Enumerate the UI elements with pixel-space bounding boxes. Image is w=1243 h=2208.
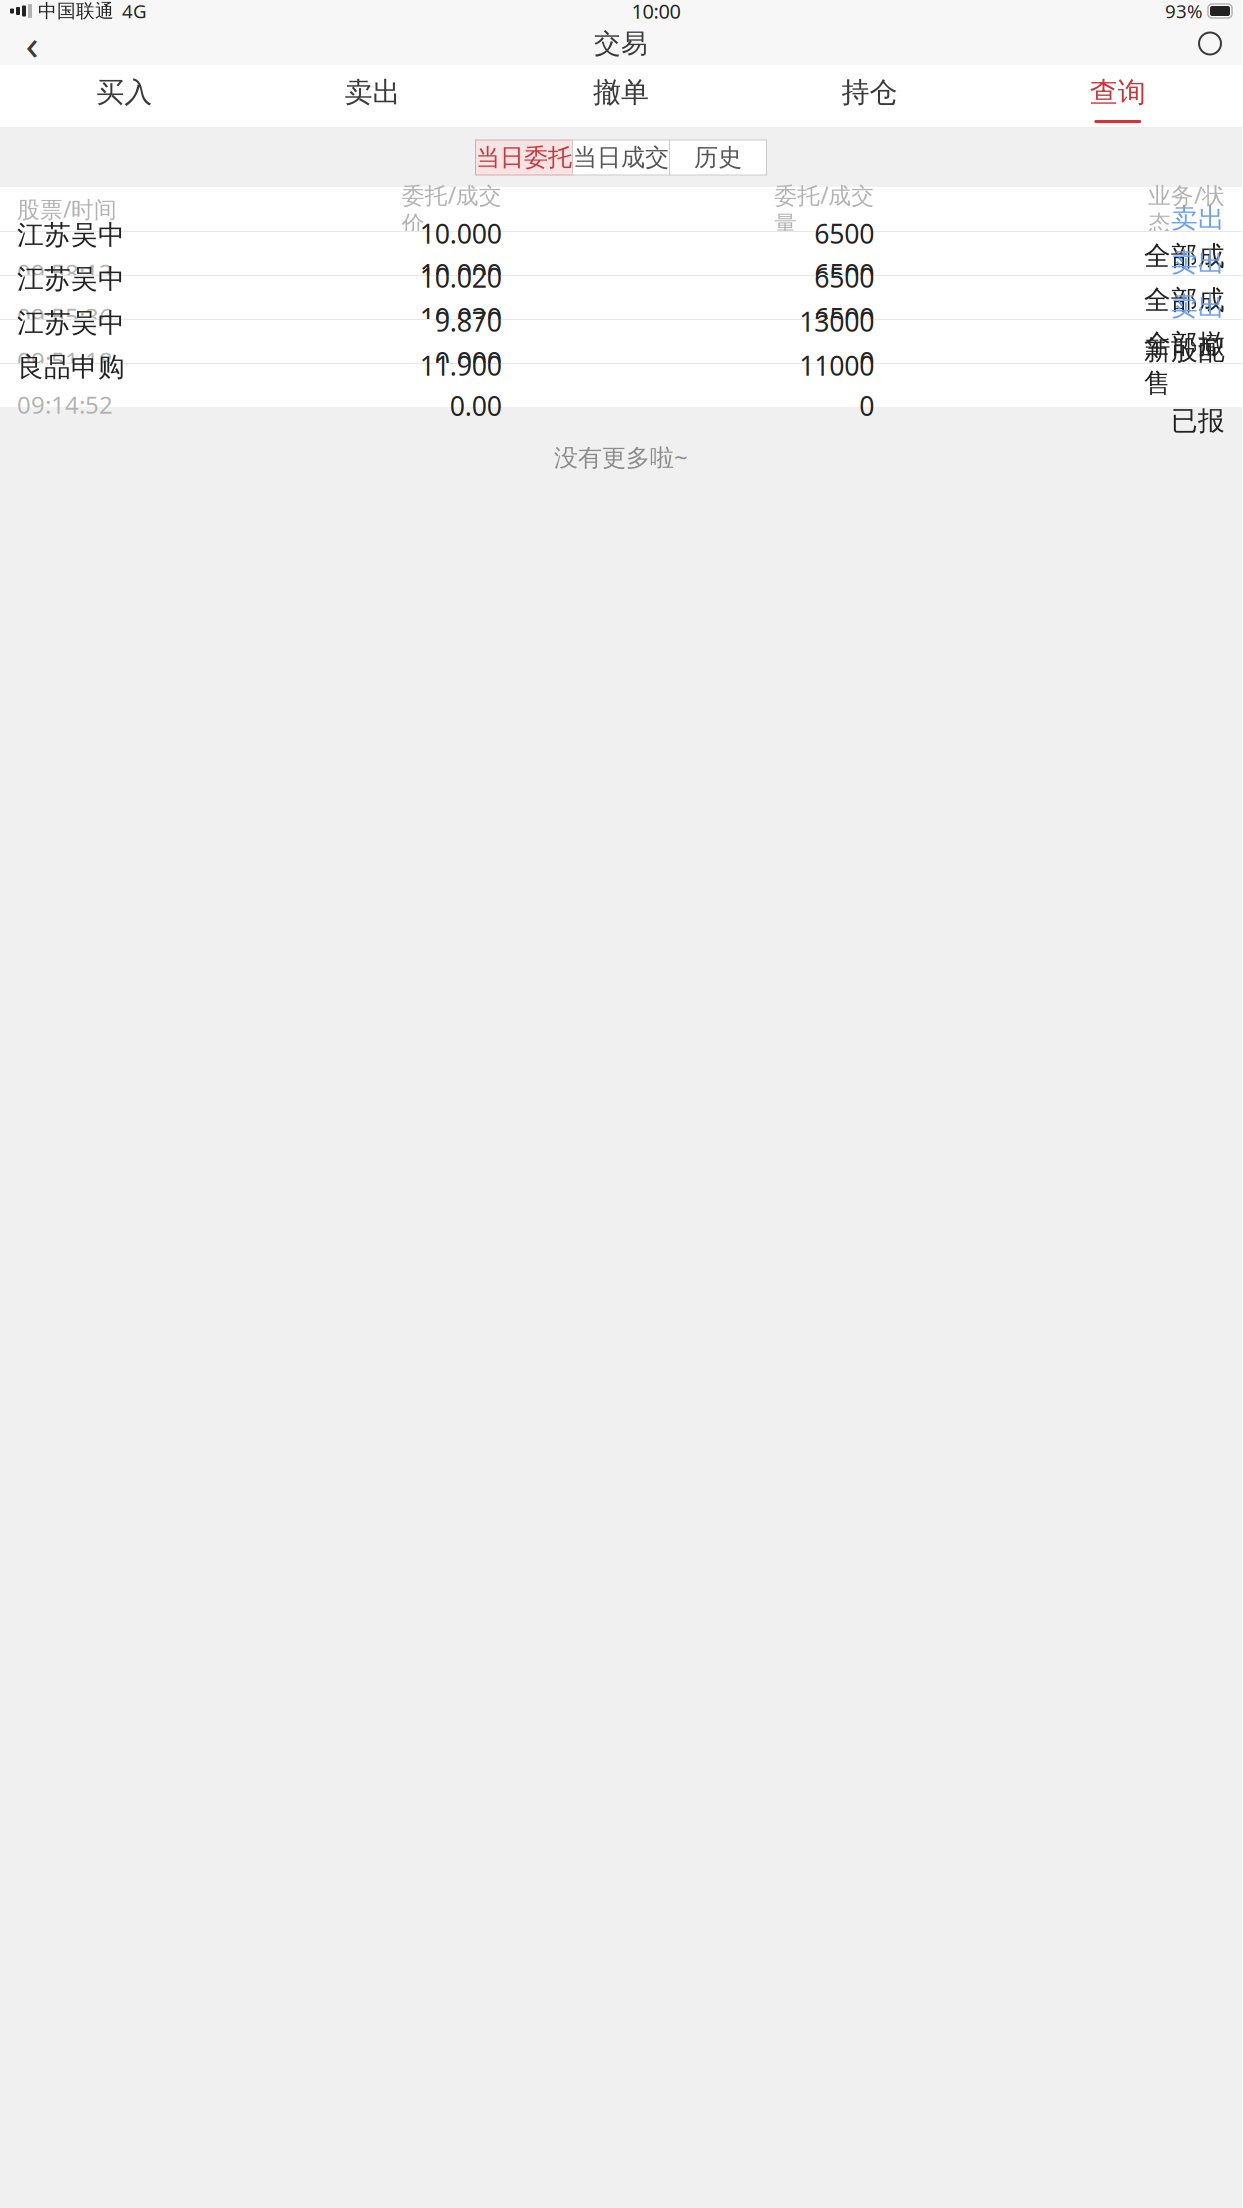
button[interactable]: 江苏吴中 bbox=[0, 276, 1242, 319]
staticText: 没有更多啦~ bbox=[554, 441, 688, 473]
button[interactable]: 江苏吴中 bbox=[0, 232, 1242, 275]
staticText: 9.870 bbox=[435, 304, 502, 339]
staticText: 全部成交 bbox=[1144, 240, 1225, 305]
staticText: 查询 bbox=[1090, 75, 1146, 110]
button[interactable]: 买入 bbox=[0, 65, 248, 127]
staticText: 10.000 bbox=[420, 256, 502, 291]
staticText: 股票/时间 bbox=[17, 194, 117, 224]
button[interactable]: 良品申购 bbox=[0, 364, 1242, 407]
staticText: 已报 bbox=[1171, 404, 1225, 437]
button[interactable]: 当日成交 bbox=[572, 140, 669, 175]
button[interactable]: 当日委托 bbox=[475, 140, 572, 175]
staticText: 卖出 bbox=[1171, 246, 1225, 279]
staticText: 中国联通 bbox=[38, 0, 114, 22]
staticText: 买入 bbox=[96, 75, 152, 110]
staticText: 持仓 bbox=[841, 75, 897, 110]
button[interactable]: 查询 bbox=[994, 65, 1242, 127]
staticText: 江苏吴中 bbox=[17, 263, 125, 295]
staticText: 10:00 bbox=[631, 0, 680, 24]
staticText: 历史 bbox=[694, 143, 742, 172]
staticText: 6500 bbox=[814, 216, 874, 251]
staticText: 6500 bbox=[814, 300, 874, 335]
staticText: 6500 bbox=[814, 260, 874, 295]
staticText: 4G bbox=[122, 0, 147, 23]
staticText: 13000 bbox=[799, 304, 874, 339]
staticText: 当日成交 bbox=[573, 143, 669, 172]
staticText: 0.00 bbox=[450, 388, 502, 423]
staticText: 业务/状态 bbox=[1148, 180, 1225, 238]
staticText: 卖出 bbox=[1171, 290, 1225, 323]
staticText: 10.030 bbox=[420, 300, 502, 335]
staticText: 11.900 bbox=[420, 348, 502, 383]
staticText: 93% bbox=[1165, 0, 1203, 23]
button[interactable]: 返回 bbox=[6, 22, 58, 65]
staticText: 良品申购 bbox=[17, 351, 125, 383]
staticText: 撤单 bbox=[593, 75, 649, 110]
staticText: 全部撤单 bbox=[1144, 328, 1225, 393]
staticText: ‹ bbox=[25, 15, 38, 72]
button[interactable]: 卖出 bbox=[248, 65, 497, 127]
staticText: 09:55:36 bbox=[17, 300, 113, 332]
staticText: 委托/成交价 bbox=[402, 180, 502, 238]
staticText: 10.020 bbox=[420, 260, 502, 295]
button[interactable]: 刷新 bbox=[1184, 22, 1236, 65]
staticText: 09:51:18 bbox=[17, 344, 113, 376]
staticText: 交易 bbox=[594, 27, 648, 60]
staticText: 全部成交 bbox=[1144, 284, 1225, 349]
staticText: 江苏吴中 bbox=[17, 307, 125, 339]
staticText: 0.000 bbox=[435, 344, 502, 379]
staticText: 卖出 bbox=[1171, 202, 1225, 235]
staticText: 卖出 bbox=[345, 75, 401, 110]
staticText: 11000 bbox=[799, 348, 874, 383]
button[interactable]: 江苏吴中 bbox=[0, 320, 1242, 363]
staticText: 6500 bbox=[814, 256, 874, 291]
staticText: 新股配售 bbox=[1144, 334, 1225, 399]
staticText: 委托/成交量 bbox=[774, 180, 874, 238]
staticText: 10.000 bbox=[420, 216, 502, 251]
button[interactable]: 持仓 bbox=[745, 65, 994, 127]
staticText: 江苏吴中 bbox=[17, 219, 125, 251]
button[interactable]: 历史 bbox=[669, 140, 766, 175]
button[interactable]: 撤单 bbox=[497, 65, 745, 127]
staticText: 09:14:52 bbox=[17, 388, 113, 420]
staticText: 09:58:13 bbox=[17, 256, 113, 288]
staticText: 当日委托 bbox=[476, 143, 572, 172]
staticText: 0 bbox=[859, 388, 874, 423]
staticText: 0 bbox=[859, 344, 874, 379]
